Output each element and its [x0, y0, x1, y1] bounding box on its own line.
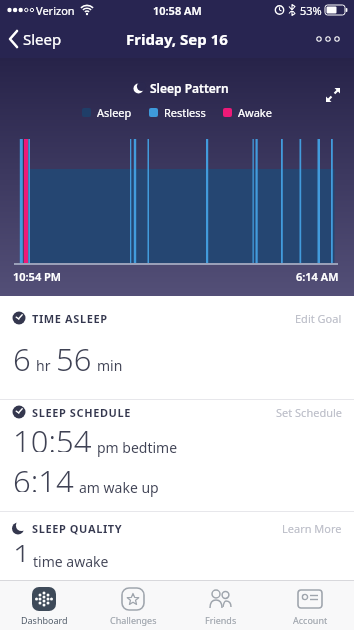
button[interactable]: Challenges — [93, 581, 173, 630]
staticText: SLEEP QUALITY — [32, 521, 123, 536]
staticText: Dashboard — [21, 614, 68, 626]
staticText: SLEEP SCHEDULE — [32, 405, 131, 420]
staticText: Account — [293, 614, 328, 626]
staticText: 56 — [56, 338, 92, 378]
staticText: hr — [36, 356, 51, 375]
staticText: Restless — [164, 105, 206, 120]
staticText: 6 — [13, 338, 31, 378]
staticText: 53% — [300, 3, 322, 18]
button[interactable]: Set Schedule — [276, 405, 342, 420]
staticText: 6:14 AM — [296, 269, 339, 284]
staticText: Friday, Sep 16 — [126, 29, 228, 49]
staticText: TIME ASLEEP — [32, 311, 108, 326]
button[interactable] — [316, 29, 342, 49]
staticText: 10:54 — [13, 420, 92, 452]
staticText: Challenges — [110, 614, 157, 626]
staticText: Awake — [238, 105, 272, 120]
staticText: Edit Goal — [295, 311, 342, 326]
button[interactable] — [325, 87, 341, 103]
staticText: Set Schedule — [276, 405, 342, 420]
staticText: pm bedtime — [97, 438, 178, 457]
staticText: min — [97, 356, 123, 375]
button[interactable]: Friends — [181, 581, 261, 630]
staticText: 6:14 — [13, 460, 74, 492]
button[interactable]: Dashboard — [4, 581, 84, 630]
button[interactable]: Sleep — [8, 29, 62, 49]
staticText: am wake up — [79, 478, 159, 497]
staticText: Learn More — [282, 521, 342, 536]
staticText: Asleep — [97, 105, 132, 120]
staticText: Verizon — [36, 3, 75, 18]
staticText: 1 — [13, 534, 31, 562]
button[interactable]: Account — [270, 581, 350, 630]
staticText: time awake — [33, 552, 109, 571]
staticText: 10:58 AM — [153, 3, 202, 18]
button[interactable]: Edit Goal — [295, 311, 342, 326]
staticText: 10:54 PM — [13, 269, 62, 284]
staticText: Sleep — [23, 29, 62, 49]
staticText: Friends — [205, 614, 237, 626]
button[interactable]: Learn More — [282, 521, 342, 536]
staticText: Sleep Pattern — [150, 80, 229, 96]
